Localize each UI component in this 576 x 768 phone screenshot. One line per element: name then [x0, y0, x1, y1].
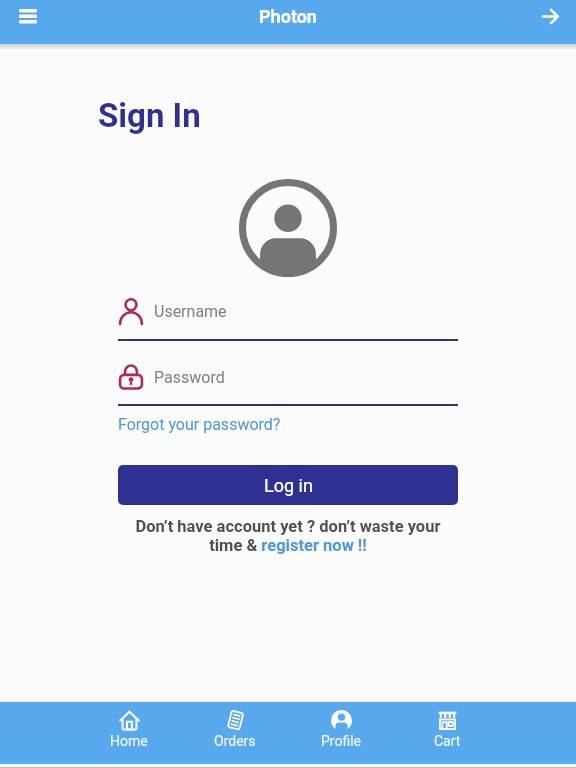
button[interactable]	[12, 3, 44, 30]
button[interactable]: Log in	[118, 465, 458, 505]
staticText: Photon	[259, 6, 317, 27]
button[interactable]	[536, 3, 566, 30]
button[interactable]: Username	[118, 298, 227, 324]
staticText: Orders	[214, 733, 256, 749]
staticText: Home	[110, 733, 148, 749]
staticText: Profile	[321, 733, 362, 749]
button[interactable]: Password	[118, 364, 225, 390]
button[interactable]: Cart	[394, 710, 500, 764]
button[interactable]: Profile	[288, 710, 394, 764]
button[interactable]: Orders	[182, 710, 288, 764]
button[interactable]: Home	[76, 710, 182, 764]
button[interactable]: Don’t have account yet ? don’t waste you…	[0, 517, 576, 555]
staticText: Password	[154, 368, 225, 387]
staticText: Log in	[264, 475, 313, 496]
button[interactable]: Forgot your password?	[118, 415, 281, 434]
staticText: Cart	[434, 733, 461, 749]
staticText: Sign In	[98, 96, 201, 135]
staticText: Username	[154, 302, 227, 321]
